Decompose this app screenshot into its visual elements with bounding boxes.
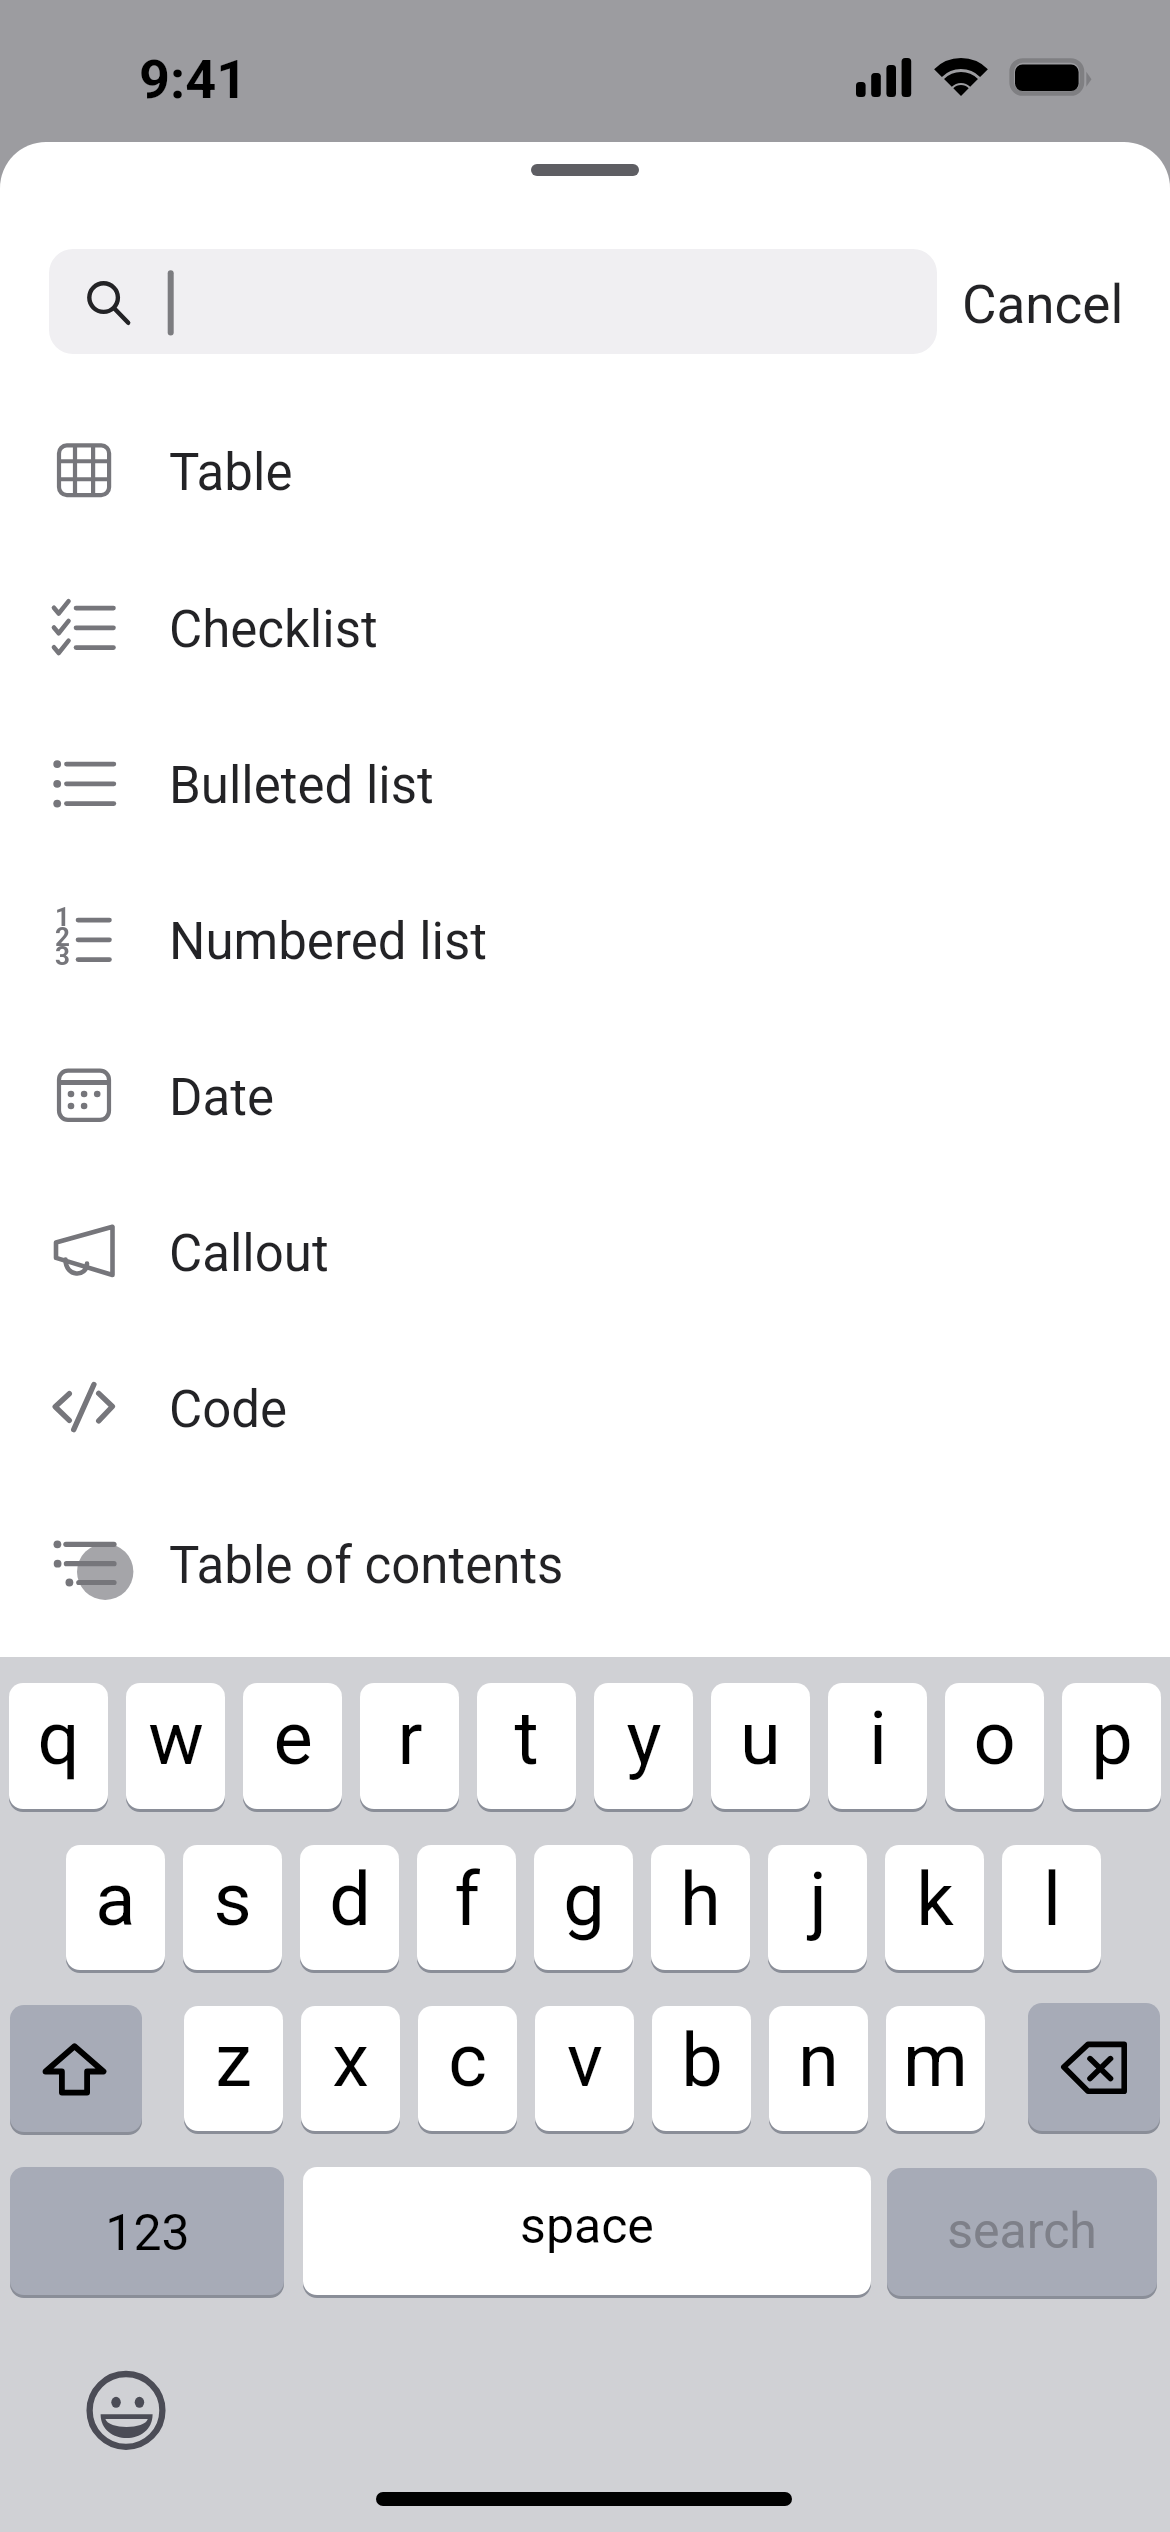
- button[interactable]: u: [711, 1683, 810, 1809]
- staticText: Table: [169, 443, 293, 503]
- staticText: space: [520, 2197, 654, 2256]
- staticText: Code: [169, 1380, 288, 1440]
- staticText: Checklist: [169, 600, 378, 660]
- staticText: 9:41: [139, 48, 248, 111]
- button[interactable]: d: [300, 1845, 399, 1970]
- staticText: k: [916, 1856, 954, 1943]
- button[interactable]: s: [183, 1845, 282, 1970]
- button[interactable]: m: [886, 2006, 985, 2131]
- staticText: Date: [169, 1068, 274, 1128]
- staticText: m: [903, 2017, 968, 2104]
- staticText: p: [1091, 1695, 1133, 1782]
- button[interactable]: Emoji keyboard: [85, 2370, 168, 2453]
- button[interactable]: p: [1062, 1683, 1161, 1809]
- button[interactable]: Shift: [10, 2005, 142, 2132]
- staticText: 1: [55, 902, 70, 932]
- staticText: l: [1043, 1856, 1061, 1943]
- button[interactable]: Table of contents: [0, 1485, 1170, 1641]
- staticText: n: [798, 2017, 839, 2104]
- staticText: Numbered list: [169, 912, 487, 972]
- staticText: Callout: [169, 1224, 329, 1284]
- button[interactable]: c: [418, 2006, 517, 2131]
- button[interactable]: Backspace: [1028, 2003, 1160, 2131]
- button[interactable]: Cancel: [955, 249, 1125, 354]
- button[interactable]: Code: [0, 1329, 1170, 1485]
- staticText: z: [215, 2017, 252, 2104]
- button[interactable]: Callout: [0, 1173, 1170, 1329]
- staticText: s: [213, 1856, 252, 1943]
- button[interactable]: Table: [0, 392, 1170, 548]
- staticText: c: [448, 2017, 487, 2104]
- staticText: h: [680, 1856, 721, 1943]
- button[interactable]: z: [184, 2006, 283, 2131]
- button[interactable]: j: [768, 1845, 867, 1970]
- button[interactable]: 1: [0, 861, 1170, 1017]
- button[interactable]: Bulleted list: [0, 705, 1170, 861]
- staticText: x: [332, 2017, 369, 2104]
- button[interactable]: l: [1002, 1845, 1101, 1970]
- staticText: search: [947, 2202, 1097, 2261]
- button[interactable]: w: [126, 1683, 225, 1809]
- button[interactable]: Checklist: [0, 549, 1170, 705]
- staticText: e: [273, 1695, 313, 1782]
- staticText: f: [454, 1856, 480, 1943]
- staticText: d: [329, 1856, 371, 1943]
- button[interactable]: Search: [49, 249, 937, 354]
- staticText: Cancel: [962, 274, 1124, 336]
- button[interactable]: r: [360, 1683, 459, 1809]
- button[interactable]: q: [9, 1683, 108, 1809]
- button[interactable]: t: [477, 1683, 576, 1809]
- button[interactable]: k: [885, 1845, 984, 1970]
- button[interactable]: Date: [0, 1017, 1170, 1173]
- button[interactable]: 123: [10, 2167, 284, 2295]
- button[interactable]: i: [828, 1683, 927, 1809]
- staticText: y: [626, 1695, 662, 1782]
- button[interactable]: o: [945, 1683, 1044, 1809]
- button[interactable]: n: [769, 2006, 868, 2131]
- staticText: b: [681, 2017, 723, 2104]
- staticText: u: [740, 1695, 781, 1782]
- staticText: t: [514, 1695, 539, 1782]
- staticText: 123: [105, 2204, 190, 2263]
- button[interactable]: f: [417, 1845, 516, 1970]
- staticText: w: [148, 1695, 204, 1782]
- button[interactable]: h: [651, 1845, 750, 1970]
- staticText: i: [869, 1695, 887, 1782]
- staticText: a: [95, 1856, 136, 1943]
- button[interactable]: y: [594, 1683, 693, 1809]
- staticText: 3: [55, 941, 70, 971]
- button[interactable]: search: [887, 2168, 1157, 2296]
- staticText: 2: [55, 922, 70, 952]
- staticText: j: [809, 1856, 827, 1943]
- staticText: q: [37, 1695, 80, 1782]
- button[interactable]: b: [652, 2006, 751, 2131]
- staticText: v: [567, 2017, 603, 2104]
- staticText: g: [563, 1856, 605, 1943]
- staticText: o: [973, 1695, 1016, 1782]
- button[interactable]: space: [303, 2167, 871, 2295]
- button[interactable]: g: [534, 1845, 633, 1970]
- button[interactable]: a: [66, 1845, 165, 1970]
- button[interactable]: e: [243, 1683, 342, 1809]
- button[interactable]: v: [535, 2006, 634, 2131]
- button[interactable]: x: [301, 2006, 400, 2131]
- staticText: Table of contents: [169, 1536, 564, 1596]
- staticText: r: [397, 1695, 423, 1782]
- staticText: Bulleted list: [169, 756, 434, 816]
